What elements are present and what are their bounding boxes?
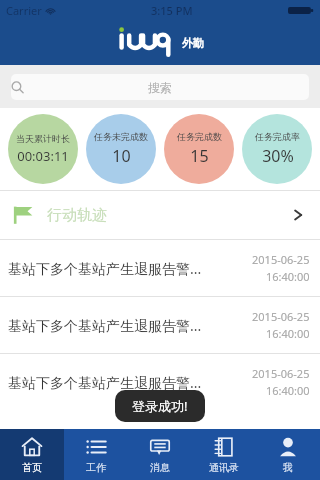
- staticText: 2015-06-25: [252, 252, 310, 267]
- staticText: Carrier: [6, 3, 42, 18]
- button[interactable]: 当天累计时长: [8, 114, 78, 184]
- staticText: 首页: [22, 461, 42, 474]
- staticText: 外勤: [182, 36, 204, 50]
- staticText: 基站下多个基站产生退服告警...: [8, 316, 248, 335]
- staticText: 16:40:00: [266, 383, 310, 398]
- staticText: 工作: [86, 461, 106, 474]
- button[interactable]: 任务完成数: [164, 114, 234, 184]
- staticText: 消息: [150, 461, 170, 474]
- button[interactable]: 基站下多个基站产生退服告警...: [0, 297, 320, 353]
- staticText: 30%: [262, 145, 294, 167]
- button[interactable]: 我: [256, 429, 320, 480]
- staticText: 基站下多个基站产生退服告警...: [8, 373, 248, 392]
- staticText: 2015-06-25: [252, 366, 310, 381]
- staticText: 16:40:00: [266, 269, 310, 284]
- staticText: 基站下多个基站产生退服告警...: [8, 259, 248, 278]
- button[interactable]: 基站下多个基站产生退服告警...: [0, 354, 320, 410]
- staticText: 当天累计时长: [16, 133, 70, 144]
- staticText: 我: [283, 461, 293, 474]
- staticText: 00:03:11: [17, 147, 69, 165]
- staticText: 任务完成率: [255, 131, 300, 142]
- button[interactable]: 通讯录: [192, 429, 256, 480]
- button[interactable]: 任务未完成数: [86, 114, 156, 184]
- staticText: 2015-06-25: [252, 309, 310, 324]
- button[interactable]: 任务完成率: [242, 114, 312, 184]
- staticText: 10: [112, 145, 131, 167]
- staticText: 通讯录: [209, 461, 239, 474]
- staticText: 任务未完成数: [94, 131, 148, 142]
- staticText: 任务完成数: [177, 131, 222, 142]
- staticText: 16:40:00: [266, 326, 310, 341]
- button[interactable]: 首页: [0, 429, 64, 480]
- staticText: 登录成功!: [132, 397, 188, 415]
- staticText: 3:15 PM: [151, 3, 193, 18]
- button[interactable]: 搜索: [11, 74, 309, 100]
- button[interactable]: 工作: [64, 429, 128, 480]
- button[interactable]: 基站下多个基站产生退服告警...: [0, 240, 320, 296]
- button[interactable]: 行动轨迹: [0, 191, 320, 239]
- button[interactable]: 消息: [128, 429, 192, 480]
- staticText: 15: [190, 145, 209, 167]
- staticText: 行动轨迹: [47, 206, 107, 225]
- staticText: 搜索: [148, 80, 172, 95]
